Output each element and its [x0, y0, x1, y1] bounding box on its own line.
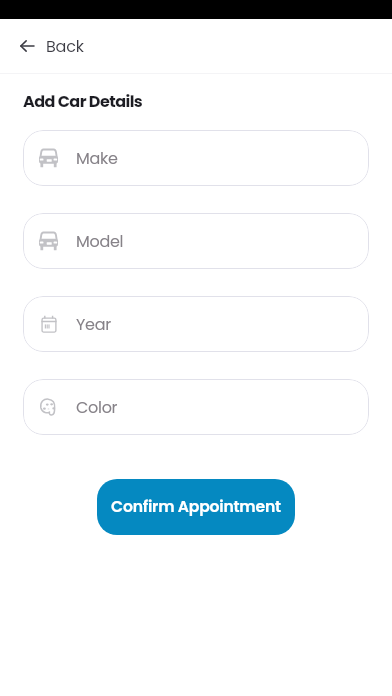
staticText: Make	[76, 147, 118, 169]
staticText: Back	[46, 35, 84, 57]
button[interactable]: Color	[23, 379, 369, 435]
button[interactable]: Back	[0, 19, 392, 73]
button[interactable]: Year	[23, 296, 369, 352]
staticText: Color	[76, 396, 118, 418]
staticText: Confirm Appointment	[111, 496, 281, 518]
staticText: Add Car Details	[23, 90, 143, 112]
staticText: Year	[76, 313, 111, 335]
button[interactable]: Make	[23, 130, 369, 186]
staticText: Model	[76, 230, 124, 252]
button[interactable]: Model	[23, 213, 369, 269]
button[interactable]: Confirm Appointment	[97, 479, 295, 535]
